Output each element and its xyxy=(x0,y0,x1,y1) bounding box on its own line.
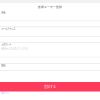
staticText: 登録する xyxy=(44,85,56,89)
staticText: パスワード xyxy=(1,43,11,46)
staticText: 新規ユーザー登録 xyxy=(38,5,62,9)
button[interactable]: 登録する xyxy=(0,82,100,91)
staticText: 氏名 xyxy=(1,11,5,14)
staticText: 8文字以上で入力してください xyxy=(1,47,28,50)
button[interactable]: ログイン xyxy=(1,91,9,94)
staticText: メールアドレス xyxy=(1,27,15,30)
staticText: 性別 xyxy=(1,64,5,67)
staticText: ログイン xyxy=(1,91,9,94)
